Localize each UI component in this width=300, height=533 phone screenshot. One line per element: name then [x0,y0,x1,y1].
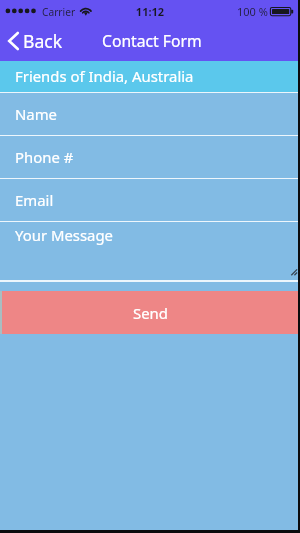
button[interactable]: Email [0,179,300,221]
staticText: Friends of India, Australia [15,66,194,86]
staticText: Send [133,303,168,323]
staticText: Carrier [42,5,76,19]
button[interactable]: Your Message [0,222,300,280]
staticText: Back [23,29,63,53]
button[interactable]: Friends of India, Australia [0,61,300,92]
button[interactable]: Send [0,290,300,333]
button[interactable]: Name [0,93,300,135]
button[interactable]: Back [0,20,66,61]
staticText: Your Message [15,225,113,245]
staticText: 100 % [237,4,268,19]
button[interactable]: Phone # [0,136,300,177]
staticText: Contact Form [102,30,202,51]
staticText: Name [15,104,57,124]
staticText: Phone # [15,147,74,167]
staticText: 11:12 [0,4,300,19]
staticText: Email [15,190,54,210]
